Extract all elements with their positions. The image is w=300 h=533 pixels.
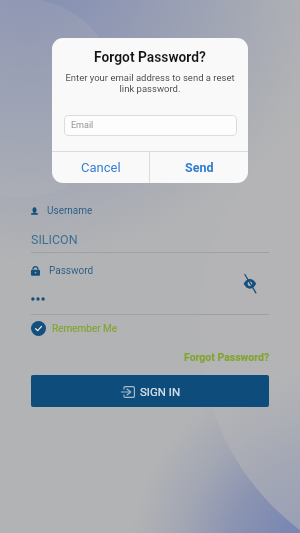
staticText: Cancel: [81, 160, 121, 175]
button[interactable]: Remember Me: [31, 321, 118, 336]
staticText: Forgot Password?: [52, 49, 248, 65]
button[interactable]: SIGN IN: [31, 375, 269, 407]
staticText: Send: [185, 160, 214, 175]
staticText: SIGN IN: [140, 385, 181, 398]
button[interactable]: Cancel: [52, 152, 149, 183]
staticText: Password: [49, 265, 94, 277]
staticText: SILICON: [31, 232, 78, 247]
button[interactable]: Show password: [243, 274, 258, 291]
staticText: Enter your email address to send a reset…: [58, 72, 242, 94]
button[interactable]: Forgot Password?: [184, 351, 270, 363]
button[interactable]: Email: [64, 115, 237, 136]
staticText: Username: [47, 205, 93, 217]
staticText: Remember Me: [52, 323, 118, 335]
button[interactable]: Send: [150, 152, 248, 183]
staticText: Email: [71, 120, 94, 131]
